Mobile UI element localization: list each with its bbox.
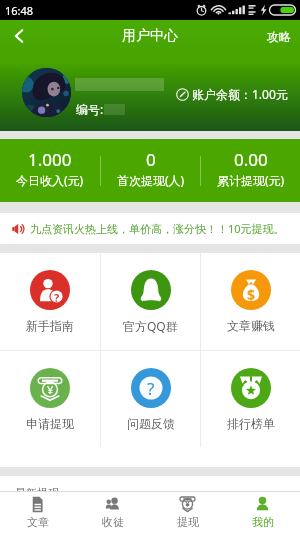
button[interactable]: 攻略 (258, 20, 300, 52)
button[interactable]: 九点资讯火热上线，单价高，涨分快！！10元提现。 (0, 213, 300, 244)
button[interactable]: 1.000 (0, 139, 100, 197)
button[interactable]: 0 (101, 139, 200, 197)
staticText: 累计提现(元) (217, 172, 285, 188)
button[interactable]: Back (0, 20, 38, 52)
staticText: 首次提现(人) (117, 172, 185, 188)
staticText: 官方QQ群 (123, 318, 178, 334)
staticText: 0.00 (234, 148, 268, 171)
staticText: 1.000 (28, 148, 72, 171)
button[interactable]: 排行榜单 (201, 351, 300, 447)
staticText: 排行榜单 (227, 416, 275, 431)
button[interactable]: ? (101, 351, 200, 447)
button[interactable]: 我的 (225, 492, 300, 533)
staticText: 账户余额：1.00元 (192, 86, 288, 102)
staticText: 编号: (76, 101, 104, 117)
staticText: 最新提现 (15, 486, 59, 491)
staticText: 攻略 (267, 29, 291, 44)
button[interactable]: 提现 (150, 492, 225, 533)
button[interactable]: 收徒 (75, 492, 150, 533)
button[interactable]: 文章 (0, 492, 75, 533)
staticText: 问题反馈 (127, 416, 175, 431)
button[interactable]: ? (0, 253, 100, 350)
staticText: 今日收入(元) (16, 172, 84, 188)
button[interactable]: 0.00 (201, 139, 300, 197)
staticText: 九点资讯火热上线，单价高，涨分快！！10元提现。 (30, 221, 285, 236)
staticText: $ (247, 285, 256, 304)
staticText: 16:48 (5, 3, 34, 18)
button[interactable]: ¥ (0, 351, 100, 447)
staticText: 申请提现 (26, 416, 74, 431)
staticText: 文章赚钱 (227, 318, 275, 333)
staticText: ¥ (47, 382, 54, 397)
staticText: 我的 (252, 515, 274, 529)
staticText: 收徒 (102, 515, 124, 529)
button[interactable]: 官方QQ群 (101, 253, 200, 350)
button[interactable]: Avatar (22, 68, 71, 117)
staticText: 用户中心 (122, 27, 178, 45)
staticText: 文章 (27, 515, 49, 529)
staticText: ? (54, 290, 60, 305)
staticText: ? (147, 377, 155, 400)
button[interactable]: 账户余额：1.00元 (176, 86, 288, 102)
button[interactable]: $ (201, 253, 300, 350)
staticText: 0 (146, 148, 156, 171)
staticText: 新手指南 (26, 318, 74, 333)
staticText: 提现 (177, 515, 199, 529)
